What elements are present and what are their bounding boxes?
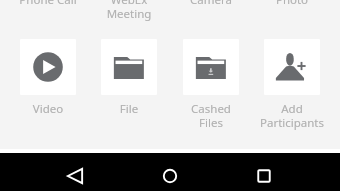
button[interactable]: Camera <box>173 0 249 8</box>
button[interactable]: File <box>91 39 167 117</box>
button[interactable]: Phone Call <box>10 0 86 8</box>
button[interactable]: Video <box>10 39 86 117</box>
button[interactable]: Add Participants <box>254 39 330 130</box>
button[interactable]: Cashed Files <box>173 39 249 130</box>
button[interactable]: Photo <box>254 0 330 8</box>
staticText: Add Participants <box>254 101 330 130</box>
staticText: Camera <box>173 0 249 8</box>
button[interactable]: Recents <box>250 162 278 190</box>
button[interactable]: WebEx Meeting <box>91 0 167 21</box>
button[interactable]: Back <box>61 162 89 190</box>
staticText: File <box>91 101 167 117</box>
staticText: Video <box>10 101 86 117</box>
staticText: Cashed Files <box>173 101 249 130</box>
staticText: Phone Call <box>10 0 86 8</box>
staticText: Photo <box>254 0 330 8</box>
button[interactable]: Home <box>156 162 184 190</box>
staticText: WebEx Meeting <box>91 0 167 21</box>
